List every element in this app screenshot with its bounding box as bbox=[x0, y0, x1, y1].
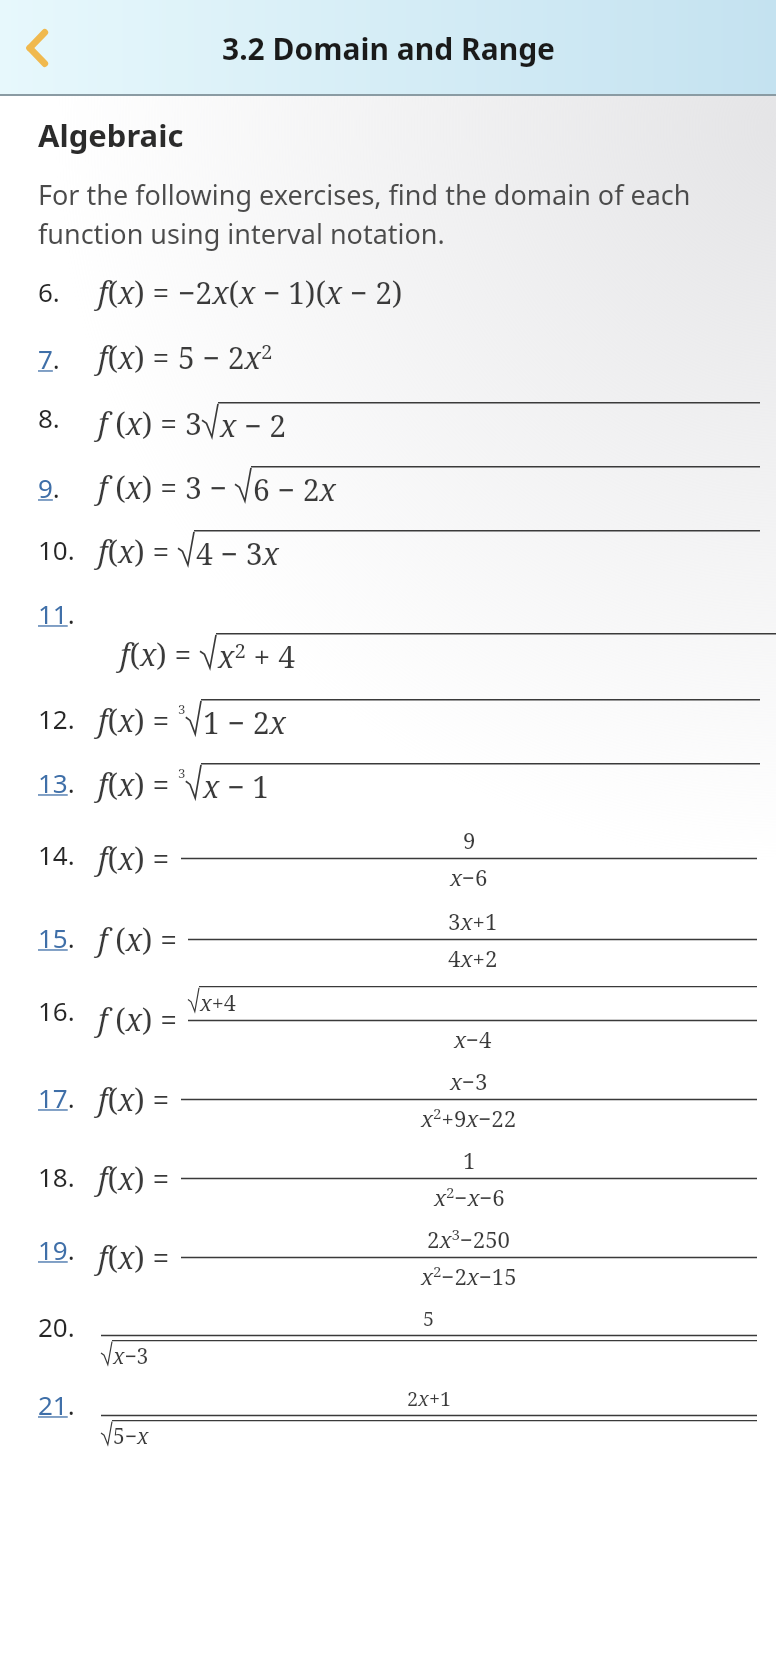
staticText: 19. bbox=[38, 1232, 75, 1267]
button[interactable]: 8. bbox=[0, 400, 776, 446]
button[interactable]: 17. bbox=[0, 1066, 776, 1133]
button[interactable]: 21. bbox=[0, 1385, 776, 1451]
staticText: 1 bbox=[463, 1145, 476, 1175]
staticText: x2 + 4 bbox=[218, 636, 295, 677]
button[interactable]: 6. bbox=[0, 272, 776, 313]
button[interactable]: 12. bbox=[0, 697, 776, 743]
staticText: 8. bbox=[38, 400, 60, 435]
staticText: 3 bbox=[178, 700, 186, 718]
staticText: 14. bbox=[38, 837, 75, 872]
staticText: 6 − 2x bbox=[253, 469, 336, 510]
staticText: 10. bbox=[38, 532, 75, 567]
button[interactable]: 7. bbox=[0, 337, 776, 378]
button[interactable]: 9. bbox=[0, 464, 776, 510]
staticText: f(x) = bbox=[98, 1158, 178, 1199]
staticText: f (x) = bbox=[98, 999, 185, 1040]
staticText: f(x) = bbox=[98, 764, 178, 805]
staticText: 4 − 3x bbox=[196, 533, 279, 574]
staticText: 16. bbox=[38, 993, 75, 1028]
staticText: 20. bbox=[38, 1309, 75, 1344]
staticText: 5 bbox=[423, 1305, 435, 1332]
button[interactable]: Back bbox=[10, 19, 68, 77]
staticText: −2x(x − 1)(x − 2) bbox=[178, 272, 403, 313]
staticText: f(x) = bbox=[98, 531, 178, 572]
staticText: f(x) = bbox=[120, 634, 200, 675]
staticText: f (x) = bbox=[98, 403, 185, 444]
staticText: f(x) = bbox=[98, 1079, 178, 1120]
staticText: 12. bbox=[38, 701, 75, 736]
staticText: 15. bbox=[38, 920, 75, 955]
staticText: f(x) = bbox=[98, 700, 178, 741]
staticText: 3x+1 bbox=[448, 906, 498, 936]
staticText: 5−x bbox=[113, 1422, 149, 1451]
button[interactable]: 19. bbox=[0, 1224, 776, 1291]
button[interactable]: 15. bbox=[0, 906, 776, 973]
staticText: 2x+1 bbox=[407, 1385, 452, 1412]
staticText: 21. bbox=[38, 1387, 75, 1422]
staticText: 3 bbox=[178, 764, 186, 782]
staticText: 17. bbox=[38, 1080, 75, 1115]
staticText: 2x3−250 bbox=[427, 1224, 511, 1254]
staticText: 13. bbox=[38, 765, 75, 800]
staticText: 6. bbox=[38, 274, 60, 309]
staticText: 4x+2 bbox=[448, 943, 498, 973]
staticText: 1 − 2x bbox=[203, 702, 286, 743]
staticText: x2−x−6 bbox=[434, 1182, 505, 1212]
staticText: x−3 bbox=[113, 1342, 149, 1371]
button[interactable]: 10. bbox=[0, 528, 776, 574]
staticText: 5 − 2x2 bbox=[178, 337, 273, 378]
staticText: 3 bbox=[185, 403, 202, 444]
staticText: x−3 bbox=[450, 1066, 488, 1096]
staticText: x − 2 bbox=[220, 405, 287, 446]
staticText: 9. bbox=[38, 470, 60, 505]
staticText: 11. bbox=[38, 596, 75, 631]
staticText: 7. bbox=[38, 341, 60, 376]
staticText: 18. bbox=[38, 1159, 75, 1194]
staticText: x−4 bbox=[454, 1024, 492, 1054]
button[interactable]: 20. bbox=[0, 1305, 776, 1371]
staticText: x+4 bbox=[200, 988, 236, 1017]
staticText: f (x) = bbox=[98, 467, 185, 508]
staticText: x−6 bbox=[450, 862, 488, 892]
staticText: x − 1 bbox=[203, 766, 270, 807]
staticText: 3 − bbox=[185, 467, 235, 508]
button[interactable]: 18. bbox=[0, 1145, 776, 1212]
staticText: Algebraic bbox=[38, 114, 184, 156]
staticText: 3.2 Domain and Range bbox=[222, 28, 555, 69]
staticText: For the following exercises, find the do… bbox=[38, 176, 691, 252]
button[interactable]: 13. bbox=[0, 761, 776, 807]
button[interactable]: 14. bbox=[0, 825, 776, 892]
button[interactable]: 16. bbox=[0, 985, 776, 1054]
staticText: f(x) = bbox=[98, 337, 178, 378]
staticText: f (x) = bbox=[98, 919, 185, 960]
staticText: f(x) = bbox=[98, 838, 178, 879]
staticText: x2−2x−15 bbox=[421, 1261, 517, 1291]
staticText: 9 bbox=[463, 825, 476, 855]
staticText: f(x) = bbox=[98, 272, 178, 313]
staticText: f(x) = bbox=[98, 1237, 178, 1278]
staticText: x2+9x−22 bbox=[421, 1103, 517, 1133]
button[interactable]: 11. bbox=[0, 596, 776, 631]
